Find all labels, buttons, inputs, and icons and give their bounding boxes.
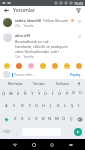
button[interactable]: L: [62, 100, 68, 112]
button[interactable]: Beğen: [76, 33, 82, 39]
button[interactable]: V: [33, 113, 39, 125]
button[interactable]: Emoji: [51, 62, 58, 69]
staticText: Ş: [71, 103, 74, 109]
staticText: S: [13, 103, 16, 109]
button[interactable]: Emoji: [27, 62, 34, 69]
button[interactable]: Sesle yaz: [75, 80, 82, 87]
button[interactable]: Tamam: [27, 79, 51, 87]
staticText: 23s Yanıtla: [15, 24, 34, 28]
button[interactable]: J: [48, 100, 54, 112]
staticText: 9: [59, 88, 61, 91]
staticText: 3: [17, 88, 19, 91]
button[interactable]: Son uygulamalar: [47, 140, 56, 149]
button[interactable]: N: [47, 113, 53, 125]
button[interactable]: Emoji: [63, 62, 70, 69]
staticText: 14s Yanıtla: [15, 55, 34, 59]
button[interactable]: Paylaş: [69, 72, 82, 77]
staticText: E: [17, 91, 20, 97]
button[interactable]: Shift: [1, 113, 11, 125]
button[interactable]: Emoji: [39, 62, 46, 69]
button[interactable]: Emoji: [15, 62, 22, 69]
staticText: Follow Gbnumi: [42, 18, 70, 23]
button[interactable]: alise.n99: [0, 30, 85, 61]
staticText: ?123: [3, 130, 10, 134]
button[interactable]: 6: [36, 87, 42, 99]
staticText: 7: [45, 88, 47, 91]
staticText: O: [58, 91, 62, 97]
button[interactable]: 5: [29, 87, 35, 99]
staticText: Ö: [62, 116, 66, 122]
staticText: Q: [2, 91, 6, 97]
button[interactable]: H: [41, 100, 47, 112]
button[interactable]: F: [27, 100, 33, 112]
staticText: 6: [38, 88, 40, 91]
button[interactable]: 9: [57, 87, 63, 99]
staticText: Y: [38, 91, 41, 97]
button[interactable]: Ç: [68, 113, 74, 125]
button[interactable]: Ş: [69, 100, 75, 112]
staticText: G: [35, 103, 39, 109]
button[interactable]: Gönder: [71, 126, 84, 138]
staticText: ,: [16, 130, 18, 135]
staticText: Ç: [70, 116, 73, 122]
button[interactable]: 4: [22, 87, 28, 99]
staticText: X: [21, 116, 24, 122]
button[interactable]: B: [40, 113, 46, 125]
button[interactable]: Emoji: [75, 62, 82, 69]
staticText: I: [78, 103, 80, 109]
staticText: Ğ: [72, 90, 76, 96]
button[interactable]: Ana ekran: [29, 140, 38, 149]
staticText: B: [42, 116, 45, 122]
staticText: alise.n99: [15, 33, 31, 38]
button[interactable]: 7: [43, 87, 49, 99]
button[interactable]: I: [76, 100, 82, 112]
button[interactable]: A: [3, 100, 10, 112]
staticText: Yorum ekle...: [14, 72, 35, 77]
staticText: H: [42, 103, 46, 109]
staticText: W: [9, 91, 13, 97]
button[interactable]: G: [34, 100, 40, 112]
button[interactable]: C: [26, 113, 32, 125]
button[interactable]: Ö: [61, 113, 67, 125]
staticText: Z: [14, 116, 17, 122]
button[interactable]: Filtrele: [75, 7, 82, 14]
staticText: A: [5, 103, 8, 109]
button[interactable]: Geri: [3, 7, 10, 14]
staticText: 8: [52, 88, 54, 91]
button[interactable]: sedna_idwn0t0: [0, 15, 85, 30]
button[interactable]: ?123: [1, 126, 12, 138]
button[interactable]: Z: [12, 113, 18, 125]
button[interactable]: Ü: [78, 87, 84, 99]
button[interactable]: Beğen: [76, 18, 82, 24]
staticText: F: [29, 103, 32, 109]
button[interactable]: Merhaba: [3, 79, 27, 87]
staticText: T: [31, 91, 34, 97]
button[interactable]: S: [11, 100, 18, 112]
staticText: 2: [10, 88, 12, 91]
button[interactable]: 1: [1, 87, 7, 99]
button[interactable]: Ğ: [71, 87, 77, 99]
button[interactable]: 3: [15, 87, 21, 99]
button[interactable]: D: [19, 100, 26, 112]
button[interactable]: X: [19, 113, 25, 125]
staticText: P: [66, 91, 69, 97]
staticText: M: [55, 116, 59, 122]
button[interactable]: 0: [64, 87, 70, 99]
staticText: Buranalkondi en cok hazirlarlar, zilkinl…: [15, 39, 68, 54]
staticText: J: [50, 103, 52, 109]
staticText: .: [65, 130, 67, 135]
button[interactable]: Emoji: [3, 62, 10, 69]
button[interactable]: 2: [8, 87, 14, 99]
button[interactable]: 8: [50, 87, 56, 99]
button[interactable]: Kullanıcı: [51, 79, 75, 87]
staticText: N: [48, 116, 52, 122]
button[interactable]: Virgül: [13, 126, 21, 138]
button[interactable]: Klavye: [66, 140, 75, 149]
button[interactable]: K: [55, 100, 61, 112]
button[interactable]: Sil: [75, 113, 84, 125]
button[interactable]: Geri: [10, 140, 19, 149]
staticText: Tamam: [33, 81, 45, 86]
button[interactable]: M: [54, 113, 60, 125]
